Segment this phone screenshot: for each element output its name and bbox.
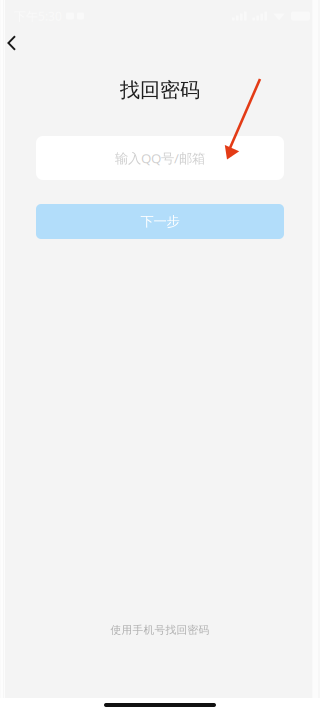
button[interactable]: 使用手机号找回密码 — [0, 623, 320, 637]
staticText: 输入QQ号/邮箱 — [115, 149, 205, 167]
button[interactable]: 输入QQ号/邮箱 — [0, 136, 320, 180]
staticText: 找回密码 — [120, 78, 200, 102]
button[interactable]: Back — [0, 26, 34, 54]
button[interactable]: 下一步 — [0, 204, 320, 239]
staticText: 使用手机号找回密码 — [110, 623, 209, 636]
staticText: 下一步 — [140, 213, 179, 230]
